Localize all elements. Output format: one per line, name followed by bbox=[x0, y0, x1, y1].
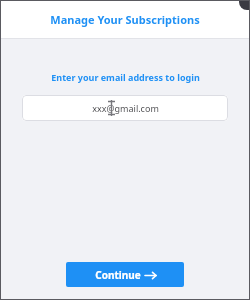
button[interactable]: Continue bbox=[66, 262, 184, 287]
button[interactable]: Close bbox=[239, 0, 250, 10]
staticText: Enter your email address to login bbox=[51, 71, 200, 83]
button[interactable]: xxx@gmail.com bbox=[22, 95, 228, 121]
staticText: xxx@gmail.com bbox=[92, 102, 159, 114]
staticText: Continue bbox=[95, 268, 141, 282]
staticText: Manage Your Subscriptions bbox=[50, 12, 200, 27]
